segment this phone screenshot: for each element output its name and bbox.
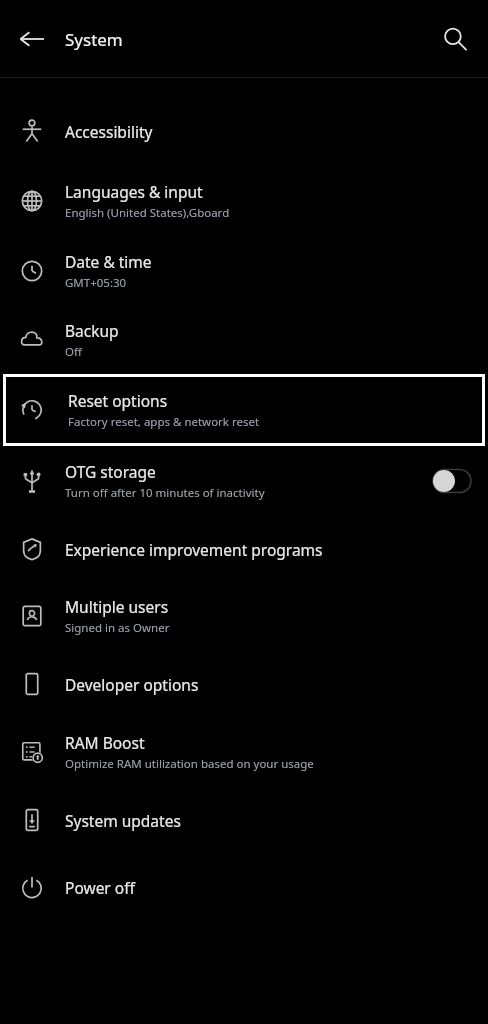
button[interactable]: Languages & input xyxy=(0,166,488,236)
button[interactable]: Search xyxy=(431,15,479,63)
button[interactable]: Experience improvement programs xyxy=(0,516,488,582)
staticText: Developer options xyxy=(65,674,199,695)
staticText: System updates xyxy=(65,810,181,831)
button[interactable]: Reset options xyxy=(3,374,485,446)
staticText: Date & time xyxy=(65,251,152,272)
staticText: Turn off after 10 minutes of inactivity xyxy=(65,485,265,501)
staticText: System xyxy=(65,28,123,51)
button[interactable]: Accessibility xyxy=(0,96,488,166)
staticText: Off xyxy=(65,344,82,360)
button[interactable]: Toggle OTG storage xyxy=(416,446,488,516)
button[interactable]: Developer options xyxy=(0,650,488,718)
button[interactable]: Power off xyxy=(0,854,488,920)
staticText: Signed in as Owner xyxy=(65,620,170,636)
button[interactable]: System updates xyxy=(0,786,488,854)
staticText: English (United States),Gboard xyxy=(65,205,230,221)
staticText: GMT+05:30 xyxy=(65,275,127,291)
staticText: Reset options xyxy=(68,390,168,411)
button[interactable]: RAM Boost xyxy=(0,718,488,786)
button[interactable]: Multiple users xyxy=(0,582,488,650)
button[interactable]: OTG storage xyxy=(0,446,488,516)
staticText: Optimize RAM utilization based on your u… xyxy=(65,756,314,772)
staticText: Experience improvement programs xyxy=(65,539,323,560)
button[interactable]: Back xyxy=(8,15,56,63)
staticText: Languages & input xyxy=(65,181,203,202)
staticText: Backup xyxy=(65,320,119,341)
staticText: RAM Boost xyxy=(65,732,145,753)
staticText: Multiple users xyxy=(65,596,169,617)
button[interactable]: Date & time xyxy=(0,236,488,306)
button[interactable]: Backup xyxy=(0,306,488,374)
staticText: OTG storage xyxy=(65,461,156,482)
staticText: Factory reset, apps & network reset xyxy=(68,414,260,430)
staticText: Power off xyxy=(65,877,135,898)
staticText: Accessibility xyxy=(65,121,153,142)
